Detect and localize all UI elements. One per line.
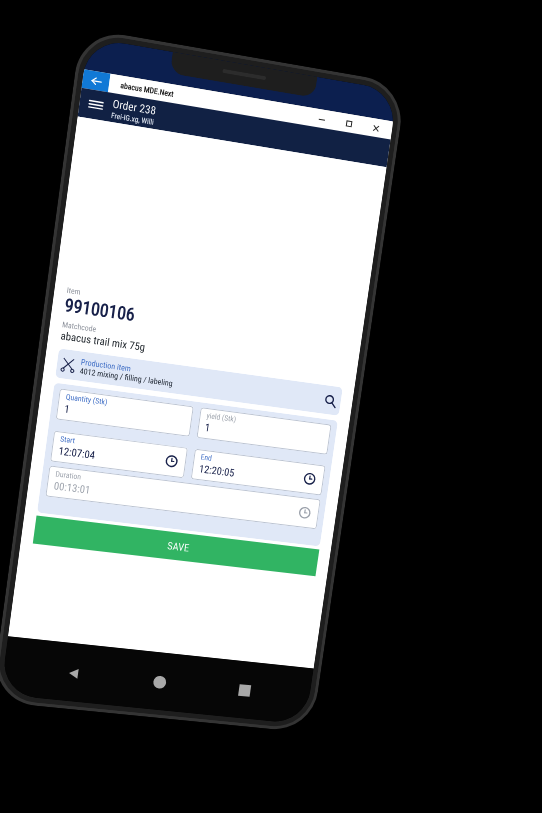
staticText: 1 [64, 402, 71, 415]
button[interactable]: Minimize [307, 107, 336, 130]
staticText: Matchcode [62, 320, 97, 334]
staticText: 1 [204, 421, 212, 434]
button[interactable]: Quantity (Stk) [56, 388, 194, 437]
staticText: End [200, 452, 213, 463]
button[interactable]: Start [50, 430, 188, 478]
button[interactable]: Search [318, 388, 342, 413]
staticText: SAVE [167, 539, 191, 554]
button[interactable]: Production item [55, 348, 343, 416]
button[interactable]: Duration [45, 465, 321, 529]
staticText: abacus trail mix 75g [60, 329, 146, 353]
staticText: Start [60, 434, 76, 445]
button[interactable]: yield (Stk) [196, 407, 332, 455]
button[interactable]: Back [52, 652, 95, 693]
staticText: 4012 mixing / filling / labeling [79, 367, 173, 388]
button[interactable]: Home [138, 661, 180, 702]
button[interactable]: SAVE [33, 516, 319, 576]
staticText: Order 238 [112, 97, 157, 118]
staticText: Item [66, 286, 82, 297]
staticText: 12:07:04 [58, 444, 97, 461]
staticText: 12:20:05 [198, 462, 236, 479]
staticText: 00:13:01 [53, 479, 92, 496]
staticText: Frei-IG.xg, Willi [111, 111, 154, 126]
button[interactable]: Maximize [334, 112, 363, 134]
button[interactable]: Menu [78, 88, 114, 122]
button[interactable]: Back [81, 69, 111, 92]
staticText: Quantity (Stk) [65, 392, 109, 407]
staticText: 99100106 [63, 295, 137, 326]
staticText: yield (Stk) [206, 411, 238, 424]
staticText: abacus MDE.Next [120, 81, 175, 99]
button[interactable]: End [191, 449, 326, 496]
staticText: Duration [55, 469, 82, 482]
staticText: Production item [80, 357, 132, 373]
button[interactable]: Close [361, 116, 390, 139]
button[interactable]: Recents [224, 670, 265, 711]
